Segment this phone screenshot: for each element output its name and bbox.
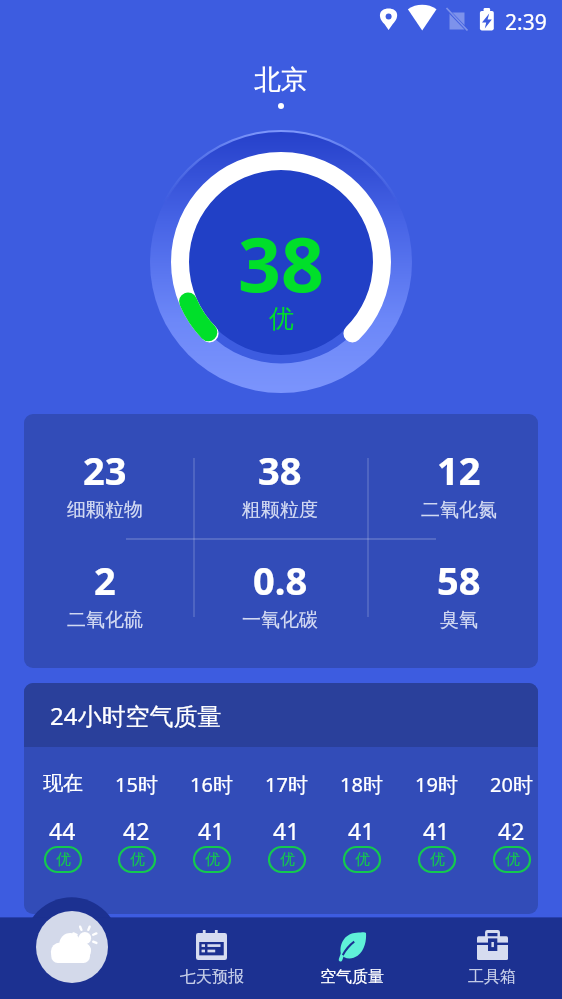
staticText: 38 [258, 444, 302, 496]
button[interactable]: 38 [195, 414, 365, 522]
staticText: 41 [423, 815, 450, 846]
staticText: 北京 [254, 63, 308, 97]
staticText: 41 [273, 815, 300, 846]
staticText: 现在 [43, 771, 83, 796]
button[interactable]: 58 [374, 524, 538, 632]
staticText: 二氧化硫 [67, 608, 143, 632]
staticText: 15时 [115, 771, 158, 798]
staticText: 44 [49, 815, 76, 846]
staticText: 一氧化碳 [242, 608, 318, 632]
staticText: 优 [505, 850, 520, 869]
staticText: 七天预报 [180, 967, 244, 987]
button[interactable]: 23 [24, 414, 190, 522]
button[interactable]: 12 [374, 414, 538, 522]
staticText: 优 [280, 850, 295, 869]
button[interactable]: 0.8 [195, 524, 365, 632]
staticText: 12 [437, 444, 481, 496]
staticText: 粗颗粒度 [242, 498, 318, 522]
staticText: 2:39 [505, 8, 547, 37]
staticText: 优 [130, 850, 145, 869]
staticText: 41 [348, 815, 375, 846]
staticText: 优 [355, 850, 370, 869]
button[interactable]: 18时 [324, 771, 399, 878]
staticText: 24小时空气质量 [50, 699, 222, 732]
staticText: 细颗粒物 [67, 498, 143, 522]
button[interactable]: 19时 [399, 771, 474, 878]
button[interactable]: 2 [24, 524, 190, 632]
button[interactable]: 17时 [249, 771, 324, 878]
staticText: 2 [94, 554, 116, 606]
staticText: 41 [198, 815, 225, 846]
staticText: 优 [205, 850, 220, 869]
button[interactable]: 15时 [99, 771, 174, 878]
staticText: 优 [430, 850, 445, 869]
staticText: 空气质量 [320, 967, 384, 987]
staticText: 58 [437, 554, 481, 606]
staticText: 优 [269, 303, 294, 334]
staticText: 17时 [265, 771, 308, 798]
button[interactable]: 16时 [174, 771, 249, 878]
button[interactable]: 空气质量 [282, 918, 422, 999]
staticText: 18时 [340, 771, 383, 798]
staticText: 0.8 [253, 554, 308, 606]
staticText: 16时 [190, 771, 233, 798]
staticText: 臭氧 [440, 608, 478, 632]
button[interactable]: 工具箱 [422, 918, 562, 999]
staticText: 42 [123, 815, 150, 846]
staticText: 优 [56, 850, 71, 869]
button[interactable]: Weather [36, 911, 108, 983]
staticText: 23 [83, 444, 127, 496]
button[interactable]: 20时 [474, 771, 538, 878]
staticText: 二氧化氮 [421, 498, 497, 522]
staticText: 20时 [490, 771, 533, 798]
staticText: 19时 [415, 771, 458, 798]
button[interactable]: 现在 [25, 771, 100, 878]
staticText: 工具箱 [468, 967, 516, 987]
staticText: 38 [238, 212, 324, 314]
button[interactable]: 七天预报 [141, 918, 282, 999]
staticText: 42 [498, 815, 525, 846]
